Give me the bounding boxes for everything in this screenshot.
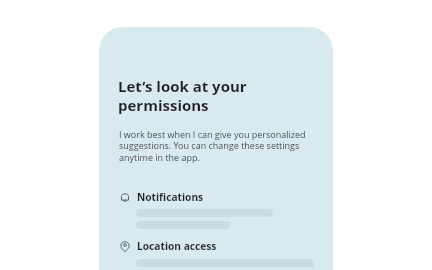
staticText: Location access — [137, 239, 217, 253]
button[interactable]: Location access — [119, 239, 239, 253]
staticText: Let’s look at your permissions — [118, 76, 318, 115]
button[interactable]: Notifications — [119, 190, 239, 204]
staticText: I work best when I can give you personal… — [119, 128, 309, 164]
staticText: Notifications — [137, 190, 204, 204]
